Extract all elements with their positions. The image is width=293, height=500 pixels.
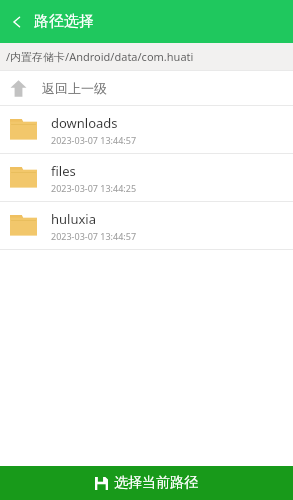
staticText: downloads bbox=[51, 114, 118, 132]
staticText: files bbox=[51, 162, 76, 180]
staticText: 2023-03-07 13:44:57 bbox=[51, 134, 137, 146]
staticText: 2023-03-07 13:44:57 bbox=[51, 230, 137, 242]
button[interactable]: Back bbox=[0, 5, 34, 39]
staticText: 2023-03-07 13:44:25 bbox=[51, 182, 137, 194]
staticText: huluxia bbox=[51, 210, 96, 228]
button[interactable]: huluxia bbox=[0, 202, 293, 250]
button[interactable]: 返回上一级 bbox=[0, 71, 293, 106]
staticText: 选择当前路径 bbox=[114, 474, 198, 492]
button[interactable]: files bbox=[0, 154, 293, 202]
staticText: 路径选择 bbox=[34, 12, 94, 31]
button[interactable]: 选择当前路径 bbox=[0, 466, 293, 500]
staticText: 返回上一级 bbox=[42, 80, 107, 96]
button[interactable]: downloads bbox=[0, 106, 293, 154]
staticText: /内置存储卡/Android/data/com.huati bbox=[6, 49, 194, 64]
